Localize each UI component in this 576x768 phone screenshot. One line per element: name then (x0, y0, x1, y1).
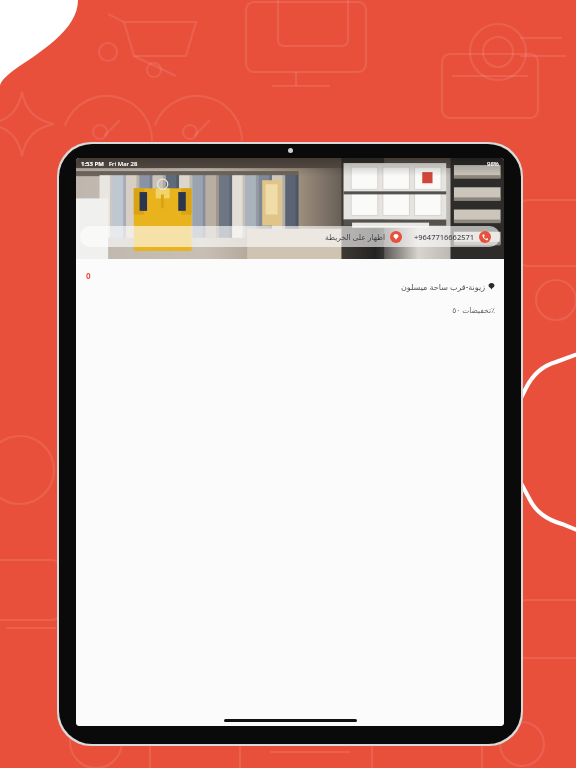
button[interactable]: +9647716662571 (411, 229, 494, 245)
staticText: +9647716662571 (414, 232, 475, 242)
button[interactable]: اظهار على الخريطة (322, 229, 405, 245)
staticText: 98% (487, 160, 499, 168)
staticText: تخفيضات ٥٠٪ (452, 305, 495, 315)
staticText: اظهار على الخريطة (325, 232, 386, 242)
staticText: زيونة-قرب ساحة ميسلون (400, 281, 485, 292)
button[interactable]: 0 (84, 268, 93, 283)
staticText: 1:53 PM (81, 160, 104, 168)
staticText: Fri Mar 28 (109, 160, 138, 168)
